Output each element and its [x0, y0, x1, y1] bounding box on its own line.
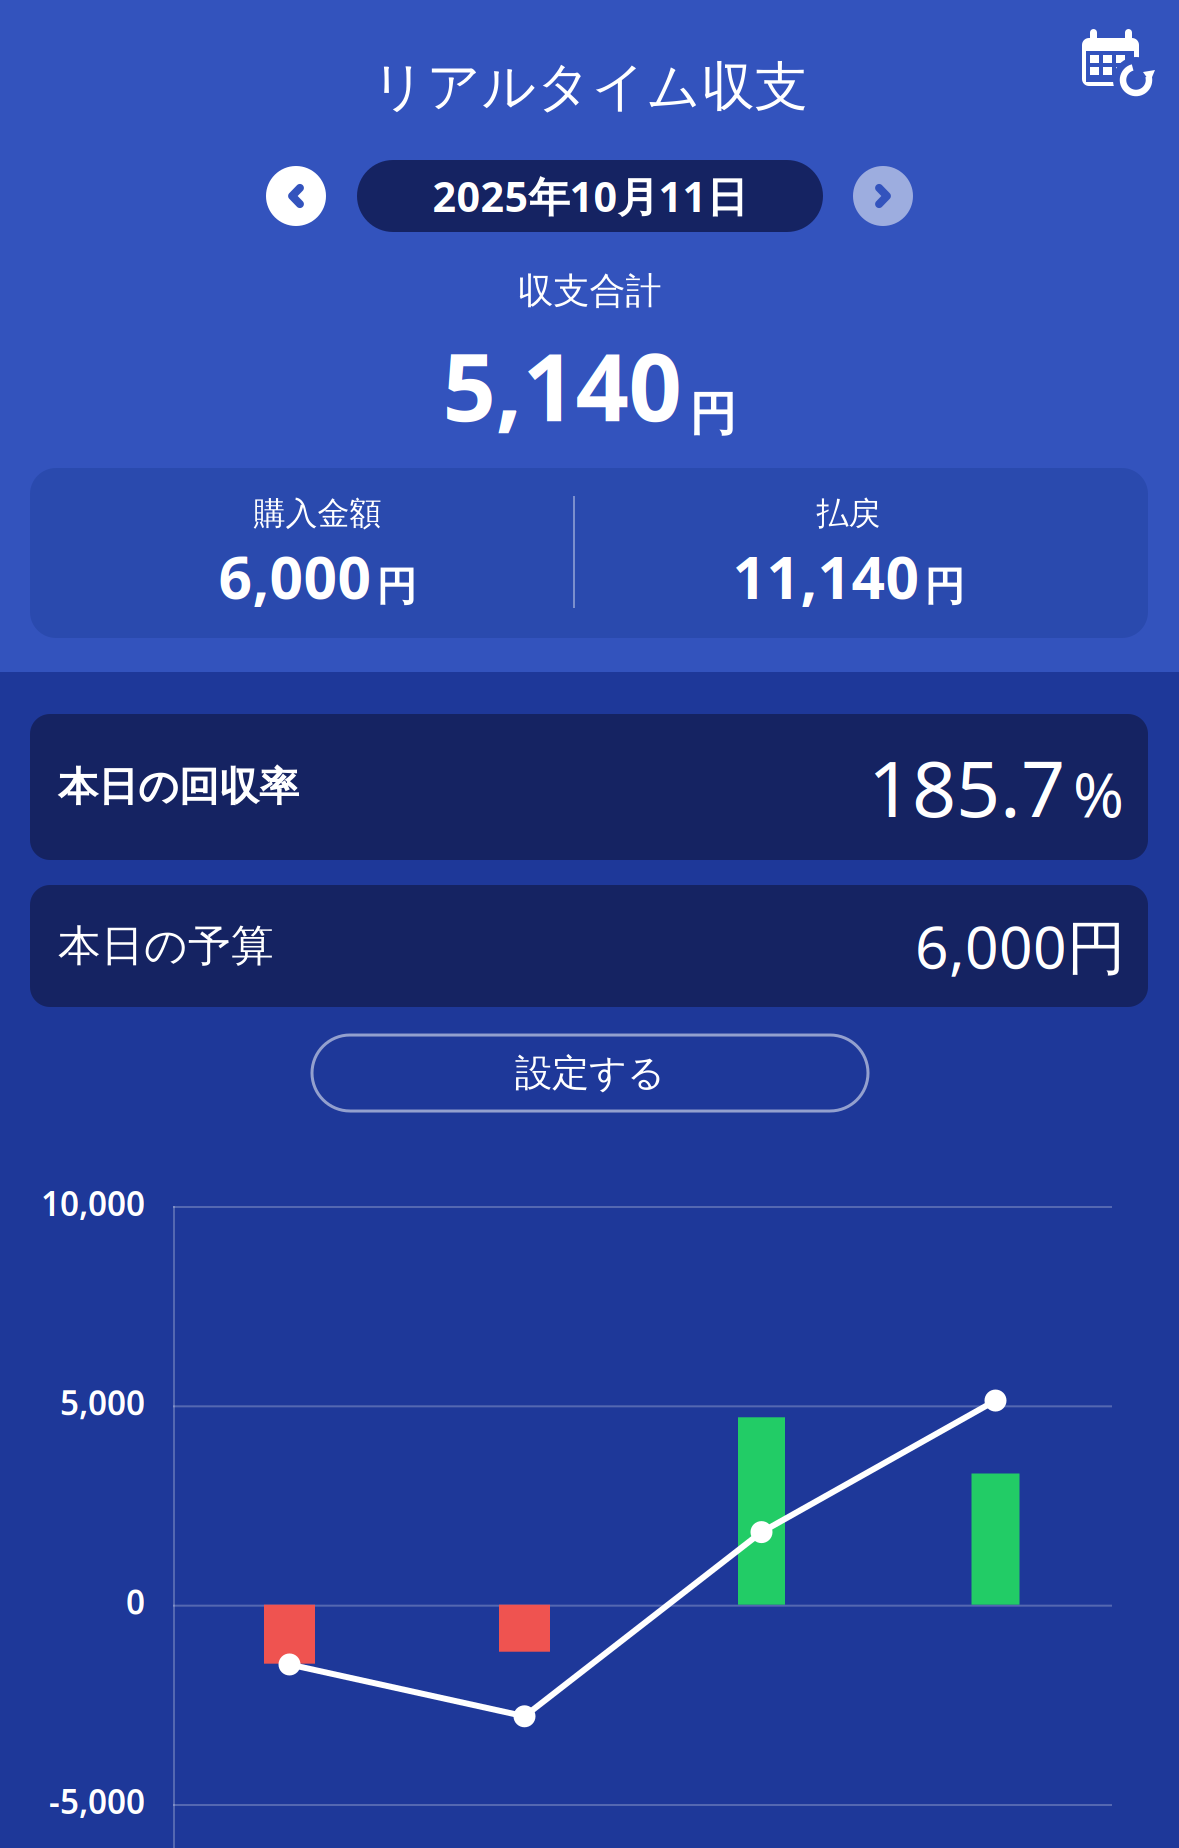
button[interactable]: 設定する: [312, 1035, 868, 1111]
staticText: 円: [924, 562, 964, 611]
button[interactable]: Previous day: [266, 166, 326, 226]
button[interactable]: Refresh: [1060, 7, 1179, 117]
staticText: 収支合計: [517, 269, 661, 313]
staticText: 本日の予算: [58, 920, 274, 972]
staticText: 設定する: [515, 1050, 665, 1096]
staticText: %: [1073, 753, 1124, 834]
staticText: -5,000: [49, 1779, 145, 1823]
staticText: 6,000円: [915, 907, 1126, 985]
staticText: 5,000: [60, 1380, 145, 1424]
staticText: 10,000: [41, 1181, 145, 1225]
staticText: リアルタイム収支: [371, 54, 807, 120]
staticText: 11,140: [732, 537, 919, 615]
button[interactable]: 2025年10月11日: [357, 160, 823, 232]
staticText: 購入金額: [253, 494, 381, 533]
staticText: 185.7: [868, 736, 1065, 838]
staticText: 6,000: [218, 537, 371, 615]
staticText: 円: [376, 562, 416, 611]
staticText: 5,140: [442, 323, 681, 447]
staticText: 本日の回収率: [58, 762, 299, 811]
staticText: 円: [689, 386, 736, 443]
staticText: 払戻: [816, 494, 880, 533]
button[interactable]: Next day: [853, 166, 913, 226]
staticText: 2025年10月11日: [432, 169, 747, 223]
staticText: 0: [126, 1579, 145, 1624]
